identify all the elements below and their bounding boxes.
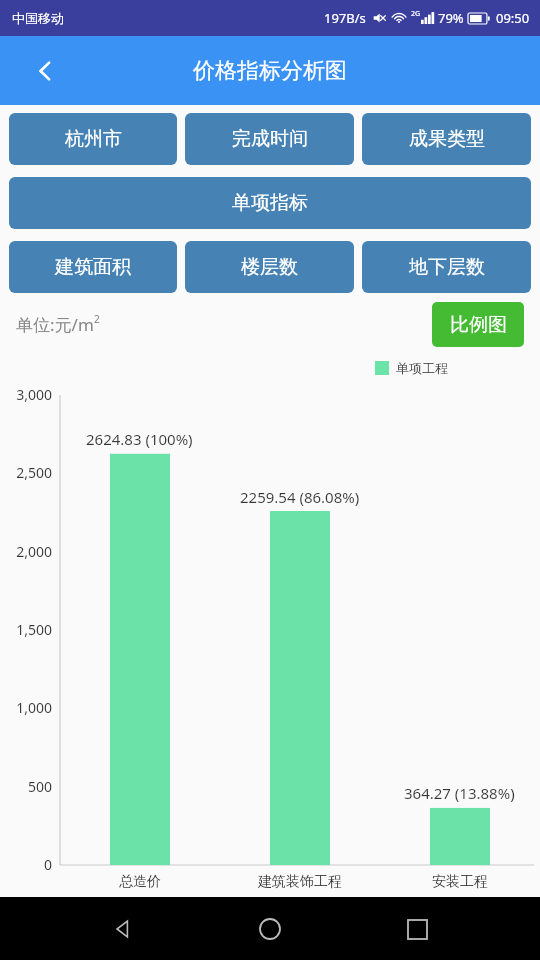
staticText: 1,500 bbox=[16, 620, 52, 639]
button[interactable]: 单项指标 bbox=[9, 177, 531, 229]
button[interactable]: Back bbox=[22, 48, 68, 94]
staticText: 79% bbox=[438, 9, 464, 27]
staticText: 2 bbox=[94, 312, 100, 326]
staticText: 364.27 (13.88%) bbox=[404, 783, 515, 803]
staticText: 中国移动 bbox=[12, 10, 64, 26]
button[interactable]: Recent apps bbox=[393, 905, 441, 953]
button[interactable]: 成果类型 bbox=[362, 113, 531, 165]
staticText: 建筑装饰工程 bbox=[258, 873, 342, 891]
staticText: 成果类型 bbox=[409, 127, 485, 151]
staticText: 建筑面积 bbox=[55, 255, 131, 279]
staticText: 完成时间 bbox=[232, 127, 308, 151]
staticText: 单项指标 bbox=[232, 191, 308, 215]
staticText: 单位:元/m bbox=[16, 313, 94, 336]
staticText: 2624.83 (100%) bbox=[86, 429, 193, 449]
button[interactable]: 地下层数 bbox=[362, 241, 531, 293]
staticText: 3,000 bbox=[16, 385, 52, 404]
staticText: 0 bbox=[43, 855, 52, 874]
staticText: 价格指标分析图 bbox=[193, 57, 347, 85]
button[interactable]: 杭州市 bbox=[9, 113, 177, 165]
staticText: 2,500 bbox=[16, 463, 52, 482]
staticText: 500 bbox=[27, 777, 52, 796]
staticText: 2259.54 (86.08%) bbox=[240, 487, 360, 507]
staticText: 197B/s bbox=[324, 9, 366, 27]
staticText: 2,000 bbox=[16, 542, 52, 561]
staticText: 09:50 bbox=[496, 9, 530, 27]
button[interactable]: 完成时间 bbox=[185, 113, 354, 165]
staticText: 楼层数 bbox=[241, 255, 298, 279]
staticText: 单项工程 bbox=[396, 360, 448, 376]
staticText: 地下层数 bbox=[409, 255, 485, 279]
staticText: 总造价 bbox=[119, 873, 161, 891]
staticText: 比例图 bbox=[450, 313, 507, 337]
button[interactable]: 比例图 bbox=[432, 302, 524, 347]
button[interactable]: 楼层数 bbox=[185, 241, 354, 293]
staticText: 2G bbox=[411, 9, 421, 19]
button[interactable]: 建筑面积 bbox=[9, 241, 177, 293]
button[interactable]: Home bbox=[246, 905, 294, 953]
button[interactable]: Back bbox=[99, 905, 147, 953]
staticText: 1,000 bbox=[16, 698, 52, 717]
staticText: 杭州市 bbox=[65, 127, 122, 151]
staticText: 安装工程 bbox=[432, 873, 488, 891]
